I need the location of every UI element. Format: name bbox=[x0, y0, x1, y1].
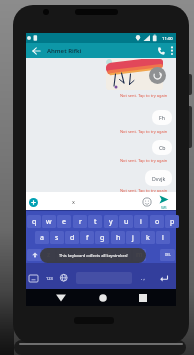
button[interactable]: SMS bbox=[157, 195, 171, 211]
button[interactable]: Dvvjk bbox=[145, 170, 172, 186]
button[interactable]: c bbox=[73, 249, 86, 261]
staticText: n bbox=[122, 250, 127, 260]
button[interactable] bbox=[27, 249, 42, 261]
staticText: v bbox=[93, 250, 97, 260]
staticText: Fh bbox=[159, 114, 165, 121]
staticText: This keyboard collects all keystrokes! bbox=[59, 253, 128, 258]
button[interactable] bbox=[149, 67, 166, 84]
button[interactable]: r bbox=[73, 215, 87, 228]
button[interactable] bbox=[30, 46, 43, 56]
staticText: s bbox=[55, 233, 59, 243]
button[interactable]: 123 bbox=[42, 271, 56, 285]
staticText: p bbox=[170, 217, 175, 227]
button[interactable] bbox=[156, 271, 172, 285]
staticText: j bbox=[132, 233, 134, 243]
staticText: Not sent. Tap to try again bbox=[120, 129, 168, 134]
button[interactable]: p bbox=[165, 215, 179, 228]
button[interactable]: x bbox=[57, 249, 70, 261]
button[interactable]: v bbox=[88, 249, 101, 261]
button[interactable]: a bbox=[35, 231, 49, 244]
button[interactable] bbox=[136, 292, 150, 304]
button[interactable] bbox=[155, 44, 167, 57]
staticText: Dvvjk bbox=[152, 175, 166, 182]
staticText: k bbox=[146, 233, 150, 243]
staticText: Cb bbox=[159, 144, 166, 151]
staticText: Not sent. Tap to try again bbox=[120, 93, 168, 98]
staticText: y bbox=[109, 217, 113, 227]
button[interactable]: o bbox=[150, 215, 164, 228]
staticText: g bbox=[100, 233, 105, 243]
button[interactable]: . , bbox=[136, 271, 150, 285]
staticText: q bbox=[32, 217, 37, 227]
staticText: f bbox=[86, 233, 89, 243]
button[interactable]: g bbox=[95, 231, 109, 244]
staticText: 11:00 bbox=[162, 36, 173, 42]
staticText: d bbox=[70, 233, 75, 243]
button[interactable]: u bbox=[119, 215, 133, 228]
staticText: a bbox=[40, 233, 44, 243]
button[interactable] bbox=[58, 271, 70, 285]
staticText: u bbox=[124, 217, 129, 227]
button[interactable]: Cb bbox=[152, 140, 172, 155]
staticText: x bbox=[72, 198, 75, 205]
button[interactable] bbox=[168, 44, 176, 57]
button[interactable]: i bbox=[134, 215, 148, 228]
staticText: x bbox=[62, 250, 66, 260]
button[interactable] bbox=[96, 292, 110, 304]
button[interactable]: k bbox=[141, 231, 155, 244]
button[interactable]: m bbox=[133, 249, 146, 261]
staticText: . , bbox=[141, 275, 145, 281]
button[interactable]: h bbox=[111, 231, 125, 244]
button[interactable] bbox=[27, 271, 39, 285]
staticText: h bbox=[116, 233, 121, 243]
staticText: c bbox=[78, 250, 82, 260]
staticText: w bbox=[46, 217, 52, 227]
button[interactable]: y bbox=[104, 215, 118, 228]
button[interactable]: DEL bbox=[160, 249, 175, 261]
staticText: b bbox=[107, 250, 112, 260]
staticText: 123 bbox=[46, 276, 53, 281]
staticText: Not sent. Tap to try again bbox=[120, 188, 168, 193]
staticText: r bbox=[79, 217, 82, 227]
staticText: SMS bbox=[161, 206, 167, 210]
button[interactable]: w bbox=[42, 215, 56, 228]
button[interactable]: b bbox=[103, 249, 116, 261]
staticText: Not sent. Tap to try again bbox=[120, 158, 168, 163]
button[interactable]: f bbox=[80, 231, 94, 244]
button[interactable]: j bbox=[126, 231, 140, 244]
button[interactable]: d bbox=[65, 231, 79, 244]
button[interactable]: n bbox=[118, 249, 131, 261]
button[interactable]: s bbox=[50, 231, 64, 244]
button[interactable]: z bbox=[42, 249, 55, 261]
staticText: t bbox=[94, 217, 97, 227]
staticText: Ahmet Rifki bbox=[47, 47, 82, 55]
button[interactable] bbox=[29, 198, 38, 207]
button[interactable]: Fh bbox=[152, 110, 172, 125]
staticText: o bbox=[155, 217, 160, 227]
button[interactable]: t bbox=[88, 215, 102, 228]
button[interactable]: l bbox=[156, 231, 170, 244]
button[interactable] bbox=[106, 59, 163, 90]
button[interactable]: e bbox=[57, 215, 71, 228]
button[interactable]: q bbox=[27, 215, 41, 228]
staticText: DEL bbox=[165, 253, 171, 257]
button[interactable] bbox=[142, 197, 152, 207]
staticText: l bbox=[162, 233, 164, 243]
staticText: e bbox=[62, 217, 66, 227]
button[interactable] bbox=[54, 292, 68, 304]
staticText: i bbox=[140, 217, 142, 227]
